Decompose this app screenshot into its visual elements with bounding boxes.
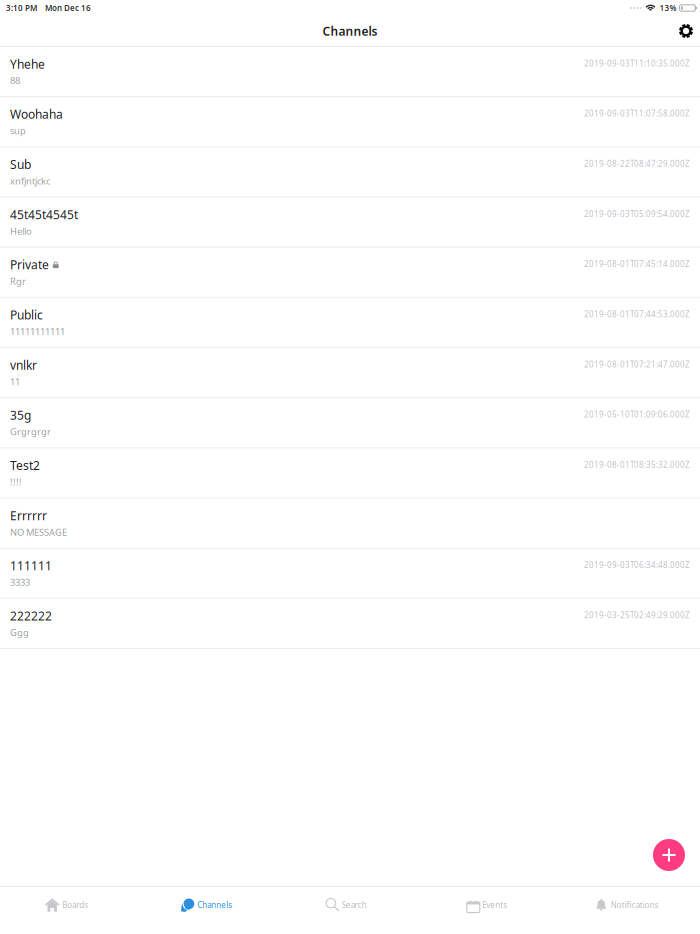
button[interactable]: 35g [0, 398, 700, 448]
staticText: Notifications [611, 900, 659, 910]
staticText: !!!! [10, 476, 22, 488]
button[interactable]: Events [420, 897, 560, 913]
staticText: Rgr [10, 275, 26, 287]
staticText: Hello [10, 225, 32, 237]
staticText: 2019-09-03T11:10:35.000Z [584, 58, 690, 69]
staticText: 88 [10, 74, 20, 87]
button[interactable]: 45t45t4545t [0, 197, 700, 248]
button[interactable]: 111111 [0, 549, 700, 599]
button[interactable]: 222222 [0, 599, 700, 649]
staticText: Channels [322, 23, 377, 39]
staticText: 2019-03-25T02:49:29.000Z [584, 610, 690, 620]
button[interactable]: Test2 [0, 448, 700, 499]
staticText: 2019-08-22T08:47:29.000Z [584, 158, 690, 169]
staticText: 13% [659, 3, 676, 13]
staticText: 11 [10, 375, 20, 388]
staticText: 2019-09-03T05:09:54.000Z [584, 208, 690, 219]
button[interactable]: Sub [0, 147, 700, 197]
staticText: Boards [62, 900, 88, 910]
staticText: 2019-08-01T07:44:53.000Z [584, 309, 690, 319]
staticText: 2019-05-10T01:09:06.000Z [584, 409, 690, 420]
staticText: 222222 [10, 608, 52, 624]
staticText: Events [482, 900, 507, 910]
button[interactable]: Yhehe [0, 47, 700, 97]
button[interactable]: Channels [140, 897, 280, 913]
staticText: 2019-09-03T06:34:48.000Z [584, 560, 690, 570]
staticText: Search [342, 900, 367, 910]
button[interactable]: vnlkr [0, 348, 700, 398]
staticText: Ggg [10, 626, 29, 639]
staticText: Yhehe [10, 56, 45, 72]
staticText: 35g [10, 407, 31, 423]
button[interactable]: Private [0, 248, 700, 298]
staticText: Public [10, 307, 43, 323]
staticText: Woohaha [10, 106, 63, 122]
staticText: Private [10, 257, 49, 273]
staticText: Grgrgrgr [10, 425, 51, 438]
staticText: xnfjntjckc [10, 175, 50, 187]
button[interactable]: Public [0, 298, 700, 348]
staticText: sup [10, 124, 26, 137]
staticText: Sub [10, 156, 31, 172]
button[interactable]: New channel [653, 839, 685, 871]
staticText: 2019-09-03T11:07:58.000Z [584, 108, 690, 119]
staticText: Mon Dec 16 [45, 3, 91, 13]
button[interactable]: Settings [672, 16, 700, 46]
staticText: Test2 [10, 457, 40, 473]
staticText: vnlkr [10, 357, 37, 373]
button[interactable]: Notifications [560, 897, 700, 913]
staticText: 11111111111 [10, 325, 65, 338]
staticText: 2019-08-01T08:35:32.000Z [584, 459, 690, 470]
staticText: NO MESSAGE [10, 526, 67, 538]
staticText: Channels [197, 900, 232, 910]
button[interactable]: Woohaha [0, 97, 700, 147]
button[interactable]: Boards [0, 897, 140, 913]
staticText: 2019-08-01T07:45:14.000Z [584, 259, 690, 269]
staticText: 3333 [10, 576, 30, 588]
staticText: 111111 [10, 558, 52, 574]
staticText: 3:10 PM [6, 3, 37, 13]
staticText: 2019-08-01T07:21:47.000Z [584, 359, 690, 370]
staticText: Errrrrr [10, 508, 47, 523]
staticText: 45t45t4545t [10, 206, 78, 222]
button[interactable]: Search [280, 897, 420, 913]
button[interactable]: Errrrrr [0, 498, 700, 549]
